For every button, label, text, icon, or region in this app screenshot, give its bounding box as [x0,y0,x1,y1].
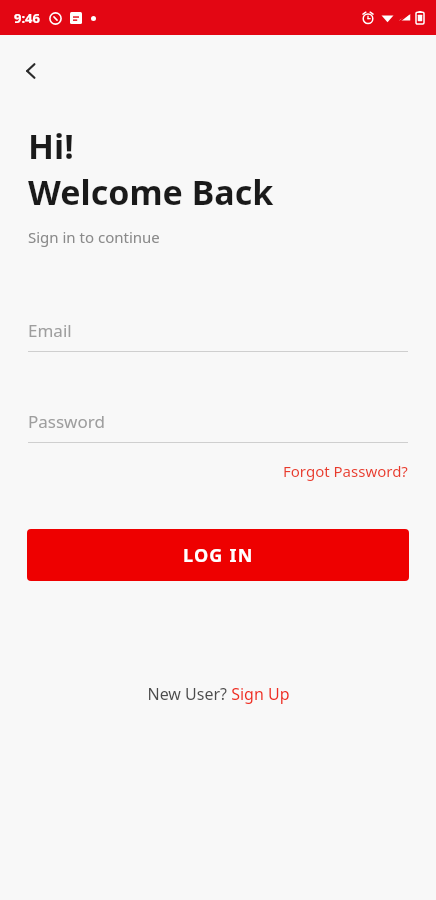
staticText: New User? Sign Up [147,683,290,705]
staticText: Sign in to continue [28,227,160,247]
button[interactable]: Forgot Password? [281,457,410,485]
staticText: Forgot Password? [283,461,408,481]
button[interactable]: Back [10,49,54,93]
staticText: Email [28,319,72,342]
staticText: 9:46 [14,9,40,27]
staticText: Welcome Back [28,169,274,215]
staticText: Password [28,410,105,433]
button[interactable]: New User? Sign Up [139,677,298,711]
button[interactable]: LOG IN [27,529,409,581]
button[interactable]: Email [28,319,408,352]
button[interactable]: Password [28,410,408,443]
staticText: LOG IN [183,543,254,568]
staticText: Hi! [28,123,74,169]
